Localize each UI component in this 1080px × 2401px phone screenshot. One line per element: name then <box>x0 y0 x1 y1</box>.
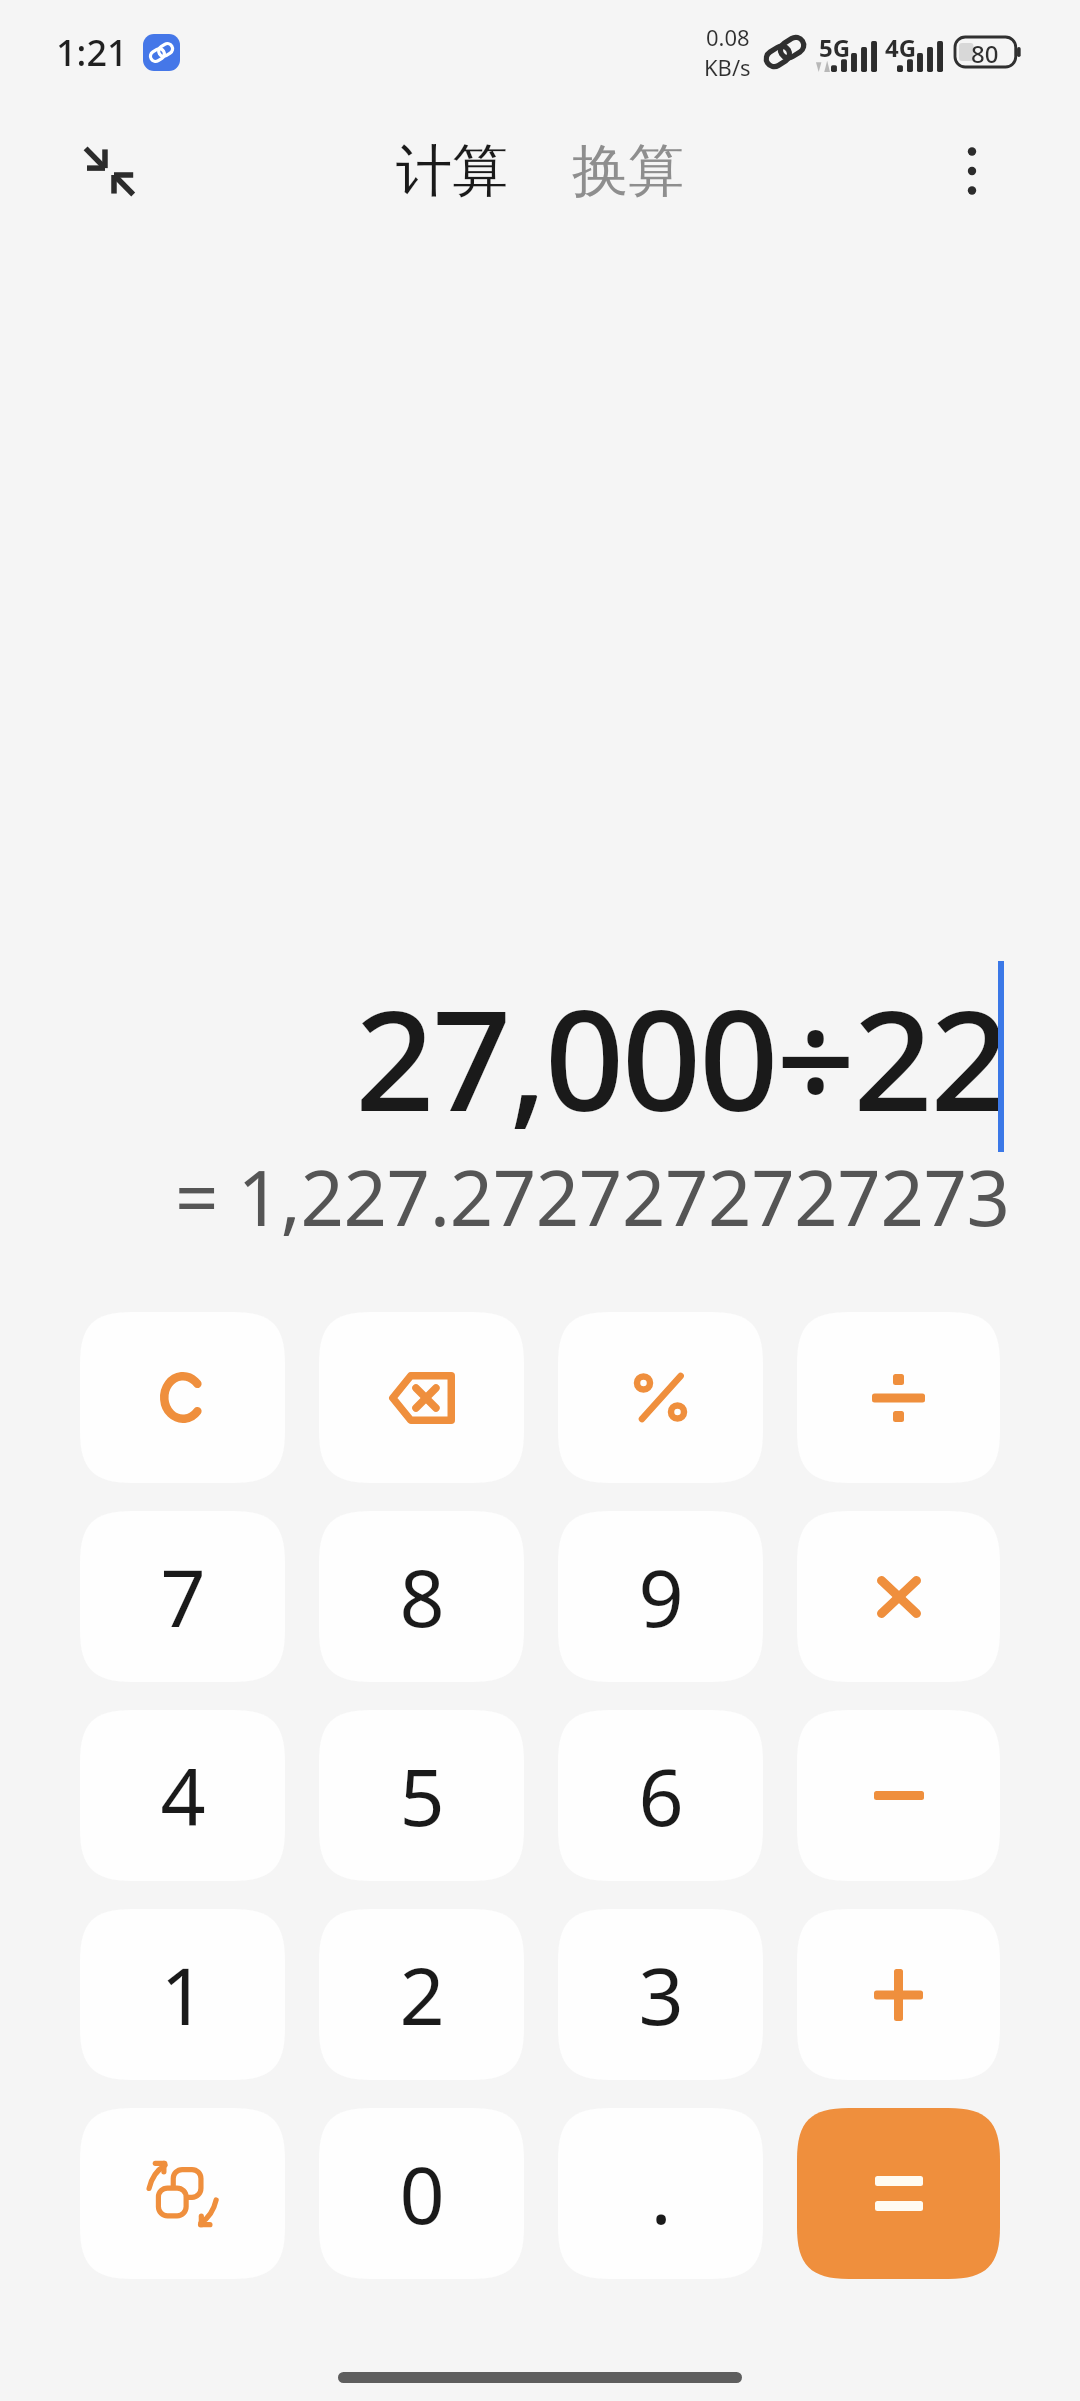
staticText: 1 <box>160 1941 206 2049</box>
button[interactable]: Multiply <box>797 1511 1000 1682</box>
staticText: = 1,227.2727272727273 <box>175 1145 1010 1249</box>
staticText: 5 <box>399 1742 445 1850</box>
staticText: 2 <box>399 1941 445 2049</box>
staticText: 6 <box>638 1742 684 1850</box>
staticText: 8 <box>399 1543 445 1651</box>
button[interactable]: Percent <box>558 1312 763 1483</box>
button[interactable]: 计算 <box>388 136 516 207</box>
staticText: 1:21 <box>56 28 128 77</box>
button[interactable]: 换算 <box>564 136 692 207</box>
button[interactable]: Convert <box>80 2108 285 2279</box>
button[interactable]: 4 <box>80 1710 285 1881</box>
button[interactable]: 6 <box>558 1710 763 1881</box>
staticText: KB/s <box>704 52 751 82</box>
button[interactable]: Equals <box>797 2108 1000 2279</box>
staticText: 9 <box>638 1543 684 1651</box>
staticText: 5G <box>819 31 851 64</box>
button[interactable]: Plus <box>797 1909 1000 2080</box>
button[interactable]: 2 <box>319 1909 524 2080</box>
button[interactable]: C <box>80 1312 285 1483</box>
staticText: 7 <box>160 1543 206 1651</box>
button[interactable]: 5 <box>319 1710 524 1881</box>
button[interactable]: Minus <box>797 1710 1000 1881</box>
button[interactable]: Collapse <box>72 135 144 207</box>
staticText: 换算 <box>572 136 684 207</box>
staticText: 4 <box>160 1742 206 1850</box>
button[interactable]: Backspace <box>319 1312 524 1483</box>
button[interactable]: 7 <box>80 1511 285 1682</box>
staticText: 27,000÷22 <box>355 962 1008 1151</box>
staticText: . <box>650 2140 672 2248</box>
button[interactable]: 9 <box>558 1511 763 1682</box>
staticText: 计算 <box>396 136 508 207</box>
button[interactable]: 8 <box>319 1511 524 1682</box>
button[interactable]: More options <box>936 135 1008 207</box>
button[interactable]: 0 <box>319 2108 524 2279</box>
button[interactable]: 3 <box>558 1909 763 2080</box>
staticText: 4G <box>885 31 917 64</box>
button[interactable]: 1 <box>80 1909 285 2080</box>
staticText: 3 <box>638 1941 684 2049</box>
staticText: 0 <box>399 2140 445 2248</box>
staticText: 80 <box>971 37 999 67</box>
button[interactable]: . <box>558 2108 763 2279</box>
staticText: 0.08 <box>706 22 750 52</box>
button[interactable]: Divide <box>797 1312 1000 1483</box>
